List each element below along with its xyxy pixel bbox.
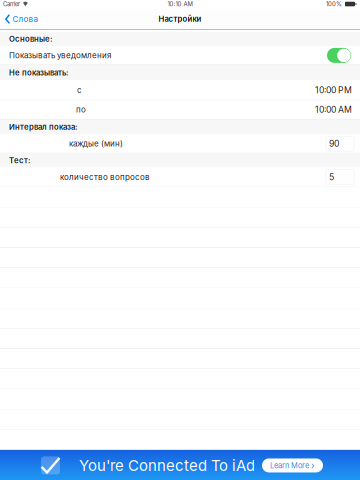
staticText: 10:00 PM bbox=[315, 85, 352, 95]
staticText: по bbox=[76, 105, 86, 115]
staticText: 10:10 AM bbox=[167, 0, 192, 8]
staticText: с bbox=[77, 85, 82, 95]
staticText: Carrier bbox=[3, 0, 20, 8]
button[interactable]: Показывать уведомления bbox=[327, 48, 351, 63]
staticText: 90 bbox=[329, 138, 339, 149]
staticText: каждые (мин) bbox=[69, 139, 123, 149]
staticText: Основные: bbox=[9, 34, 52, 44]
staticText: Не показывать: bbox=[9, 68, 68, 77]
staticText: › bbox=[311, 460, 315, 471]
staticText: Интервал показа: bbox=[9, 122, 77, 132]
staticText: You're Connected To iAd bbox=[79, 456, 255, 474]
staticText: Настройки bbox=[158, 14, 201, 24]
staticText: количество вопросов bbox=[60, 172, 150, 182]
staticText: Слова bbox=[12, 14, 37, 24]
staticText: 100% bbox=[326, 0, 342, 8]
staticText: Learn More bbox=[270, 461, 309, 470]
staticText: 5 bbox=[329, 172, 334, 182]
button[interactable]: Learn More bbox=[262, 458, 323, 472]
staticText: Тест: bbox=[9, 156, 30, 165]
staticText: 10:00 AM bbox=[315, 104, 352, 115]
staticText: Показывать уведомления bbox=[9, 51, 111, 60]
button[interactable]: Слова bbox=[0, 9, 52, 29]
